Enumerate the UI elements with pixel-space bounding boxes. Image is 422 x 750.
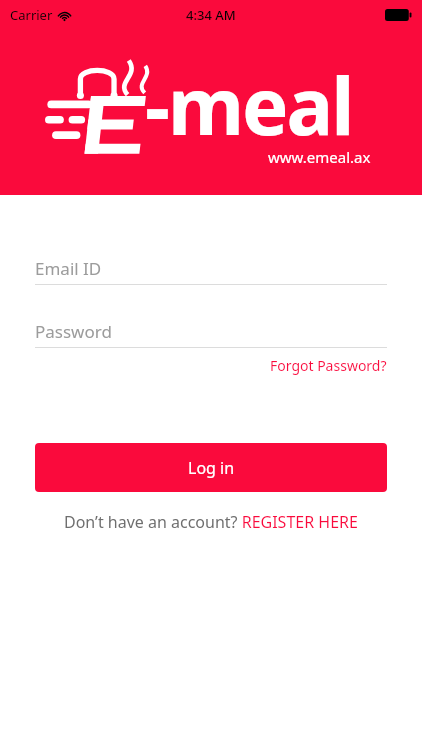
staticText: 4:34 AM bbox=[186, 6, 236, 24]
button[interactable]: Forgot Password? bbox=[270, 353, 387, 378]
staticText: Email ID bbox=[35, 257, 102, 280]
staticText: -meal bbox=[145, 52, 353, 158]
other: Battery full bbox=[385, 9, 412, 21]
button[interactable]: Password bbox=[35, 315, 387, 347]
staticText: www.emeal.ax bbox=[268, 147, 371, 167]
button[interactable]: Log in bbox=[35, 443, 387, 492]
staticText: Forgot Password? bbox=[270, 356, 387, 375]
staticText: Log in bbox=[188, 457, 235, 479]
button[interactable]: Email ID bbox=[35, 252, 387, 284]
staticText: Don’t have an account? REGISTER HERE bbox=[64, 511, 358, 533]
staticText: Carrier bbox=[10, 6, 53, 24]
other: Wi-Fi signal bbox=[58, 10, 71, 21]
other: E-meal logo bbox=[45, 54, 163, 172]
staticText: Password bbox=[35, 320, 112, 343]
button[interactable]: Don’t have an account? REGISTER HERE bbox=[56, 507, 366, 537]
